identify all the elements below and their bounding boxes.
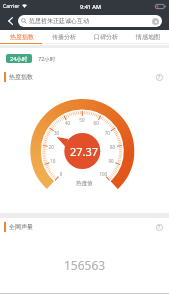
staticText: 72小时 bbox=[38, 55, 56, 63]
button[interactable]: Back bbox=[3, 13, 18, 29]
button[interactable]: 传播分析 bbox=[43, 30, 85, 43]
button[interactable]: Help bbox=[154, 222, 164, 232]
staticText: 156563 bbox=[64, 257, 106, 273]
staticText: 范思哲朱正廷诚心互动 bbox=[29, 17, 89, 25]
staticText: 9:41 AM bbox=[80, 3, 102, 10]
staticText: ? bbox=[158, 74, 161, 81]
staticText: 情感地图 bbox=[136, 33, 160, 41]
button[interactable]: 范思哲朱正廷诚心互动 bbox=[18, 15, 162, 27]
button[interactable]: Clear search bbox=[152, 18, 159, 25]
button[interactable]: 情感地图 bbox=[127, 30, 169, 43]
staticText: 热度值 bbox=[76, 180, 93, 187]
staticText: 热度指数 bbox=[9, 73, 33, 81]
button[interactable]: 口碑分析 bbox=[85, 30, 127, 43]
staticText: ? bbox=[158, 224, 161, 231]
staticText: 全网声量 bbox=[9, 223, 33, 231]
button[interactable]: 24小时 bbox=[6, 54, 32, 63]
button[interactable]: 热度指数 bbox=[0, 30, 43, 43]
button[interactable]: Help bbox=[154, 72, 164, 82]
button[interactable]: 72小时 bbox=[36, 54, 58, 63]
staticText: Carrier bbox=[3, 3, 20, 10]
staticText: 27.37 bbox=[70, 144, 99, 159]
staticText: 24小时 bbox=[10, 55, 28, 63]
staticText: 口碑分析 bbox=[94, 33, 118, 41]
staticText: 传播分析 bbox=[52, 33, 76, 41]
staticText: 热度指数 bbox=[10, 33, 34, 41]
